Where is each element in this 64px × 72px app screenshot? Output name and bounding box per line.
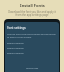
- staticText: Install now: [26, 66, 39, 69]
- staticText: Download the font you like and apply it …: [6, 10, 58, 16]
- staticText: Install Fonts: [20, 3, 45, 8]
- staticText: Choose one of the fonts below and tap in…: [7, 33, 57, 39]
- staticText: Roboto Regular: [7, 42, 24, 45]
- staticText: Roboto Regular: [7, 52, 24, 55]
- staticText: Roboto Regular: [7, 47, 24, 50]
- staticText: Font settings: [7, 26, 26, 30]
